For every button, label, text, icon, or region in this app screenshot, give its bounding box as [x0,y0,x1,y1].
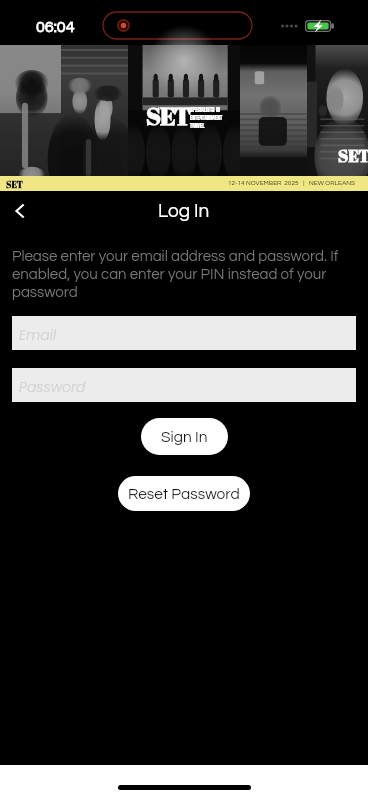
staticText: SET [6,178,23,190]
staticText: Reset Password [128,486,240,502]
button[interactable]: Back [0,191,40,231]
staticText: 06:04 [36,19,75,35]
staticText: Email [19,325,57,345]
staticText: Password [19,377,86,397]
staticText: SPECIALISTS IN [190,106,220,114]
staticText: Sign In [161,429,208,445]
staticText: ENTERTAINMENT [190,114,223,122]
staticText: NEW ORLEANS [309,180,356,187]
staticText: SET [338,144,368,167]
staticText: Log In [158,201,210,221]
button[interactable]: Sign In [141,418,228,455]
button[interactable]: Reset Password [118,476,250,511]
staticText: Please enter your email address and pass… [12,249,356,300]
staticText: 12-14 NOVEMBER 2025 [228,180,299,187]
staticText: TRAVEL [190,122,205,130]
staticText: | [299,180,309,187]
staticText: SET [146,99,190,133]
